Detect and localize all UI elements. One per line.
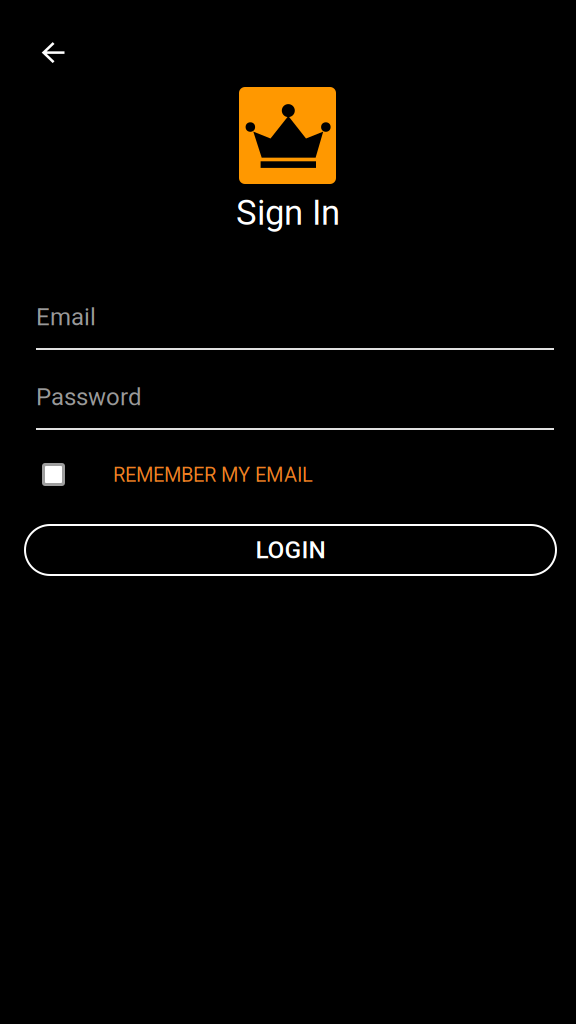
- button[interactable]: Email: [36, 305, 554, 350]
- staticText: Sign In: [236, 193, 340, 233]
- button[interactable]: REMEMBER MY EMAIL: [40, 454, 330, 496]
- button[interactable]: Password: [36, 385, 554, 430]
- staticText: REMEMBER MY EMAIL: [113, 463, 313, 487]
- staticText: Email: [36, 303, 96, 331]
- staticText: LOGIN: [255, 536, 325, 564]
- button[interactable]: LOGIN: [25, 525, 556, 575]
- staticText: Password: [36, 383, 142, 411]
- button[interactable]: Back: [28, 27, 80, 79]
